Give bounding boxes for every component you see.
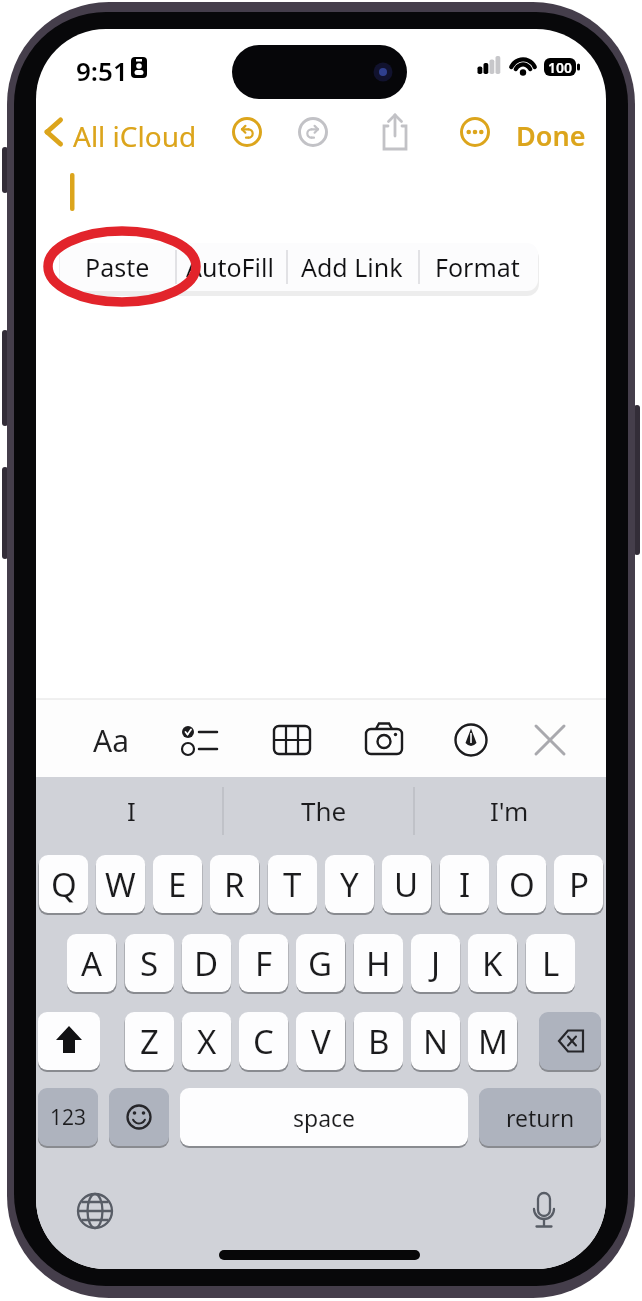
staticText: P: [569, 862, 589, 907]
button[interactable]: T: [268, 855, 317, 913]
staticText: G: [308, 941, 333, 986]
button[interactable]: M: [468, 1012, 517, 1070]
button[interactable]: Y: [325, 855, 374, 913]
button[interactable]: B: [354, 1012, 403, 1070]
button[interactable]: [76, 1192, 114, 1230]
staticText: A: [81, 941, 103, 986]
staticText: return: [506, 1102, 575, 1133]
staticText: AutoFill: [186, 250, 274, 284]
button[interactable]: The: [269, 787, 379, 833]
button[interactable]: V: [296, 1012, 345, 1070]
staticText: W: [105, 862, 136, 907]
staticText: V: [311, 1019, 331, 1064]
button[interactable]: S: [125, 934, 174, 992]
staticText: R: [224, 862, 245, 907]
staticText: I'm: [490, 793, 529, 828]
button[interactable]: U: [382, 855, 431, 913]
button[interactable]: H: [354, 934, 403, 992]
button[interactable]: J: [411, 934, 460, 992]
staticText: U: [394, 862, 419, 907]
button[interactable]: D: [182, 934, 231, 992]
button[interactable]: W: [96, 855, 145, 913]
button[interactable]: I'm: [454, 787, 564, 833]
button[interactable]: Paste: [66, 244, 168, 290]
button[interactable]: Format: [422, 244, 532, 290]
button[interactable]: E: [153, 855, 202, 913]
staticText: M: [478, 1019, 508, 1064]
button[interactable]: [539, 1012, 601, 1070]
button[interactable]: K: [468, 934, 517, 992]
button[interactable]: [182, 722, 218, 758]
button[interactable]: Add Link: [294, 244, 410, 290]
button[interactable]: I: [440, 855, 489, 913]
staticText: The: [301, 793, 347, 828]
button[interactable]: AutoFill: [179, 244, 281, 290]
button[interactable]: return: [479, 1088, 601, 1146]
staticText: S: [140, 941, 159, 986]
staticText: J: [431, 941, 441, 986]
button[interactable]: X: [182, 1012, 231, 1070]
staticText: K: [482, 941, 503, 986]
button[interactable]: 123: [38, 1088, 98, 1146]
button[interactable]: P: [554, 855, 603, 913]
button[interactable]: All iCloud: [69, 117, 200, 147]
button[interactable]: [366, 722, 402, 758]
staticText: B: [368, 1019, 390, 1064]
button[interactable]: O: [497, 855, 546, 913]
button[interactable]: [109, 1088, 169, 1146]
button[interactable]: [274, 722, 310, 758]
staticText: 100: [548, 58, 573, 76]
staticText: O: [509, 862, 535, 907]
button[interactable]: Done: [516, 117, 586, 147]
button[interactable]: Aa: [79, 717, 143, 763]
staticText: Format: [435, 250, 520, 284]
staticText: T: [283, 862, 302, 907]
button[interactable]: C: [239, 1012, 288, 1070]
button[interactable]: [459, 115, 493, 149]
button[interactable]: A: [67, 934, 116, 992]
button[interactable]: [38, 1012, 100, 1070]
staticText: 9:51: [76, 53, 128, 83]
button[interactable]: I: [76, 787, 186, 833]
staticText: 123: [50, 1103, 87, 1132]
staticText: N: [423, 1019, 449, 1064]
button[interactable]: R: [210, 855, 259, 913]
staticText: L: [542, 941, 560, 986]
staticText: H: [366, 941, 391, 986]
button[interactable]: G: [296, 934, 345, 992]
button[interactable]: F: [239, 934, 288, 992]
button[interactable]: N: [411, 1012, 460, 1070]
staticText: D: [194, 941, 219, 986]
staticText: C: [253, 1019, 274, 1064]
button[interactable]: [525, 1191, 563, 1229]
staticText: Aa: [93, 720, 129, 761]
button[interactable]: Z: [125, 1012, 174, 1070]
button[interactable]: [378, 113, 412, 151]
staticText: Y: [340, 862, 359, 907]
button[interactable]: [297, 115, 331, 149]
staticText: I: [459, 862, 471, 907]
staticText: All iCloud: [73, 117, 197, 147]
button[interactable]: Q: [39, 855, 88, 913]
button[interactable]: [453, 722, 489, 758]
staticText: F: [255, 941, 273, 986]
button[interactable]: [231, 115, 265, 149]
staticText: E: [168, 862, 187, 907]
button[interactable]: space: [180, 1088, 468, 1146]
staticText: X: [197, 1019, 217, 1064]
staticText: space: [293, 1102, 356, 1133]
staticText: Paste: [85, 250, 150, 284]
staticText: I: [127, 793, 136, 828]
staticText: Z: [140, 1019, 159, 1064]
staticText: Q: [51, 862, 77, 907]
button[interactable]: [536, 722, 572, 758]
staticText: Done: [516, 117, 586, 147]
staticText: Add Link: [301, 250, 403, 284]
button[interactable]: L: [526, 934, 575, 992]
